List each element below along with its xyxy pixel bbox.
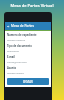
staticText: Ingrese asunto xyxy=(7,71,24,74)
button[interactable]: Asunto xyxy=(7,66,49,77)
staticText: Asunto xyxy=(7,66,17,70)
button[interactable]: Tipo de documento xyxy=(7,44,49,55)
staticText: Numero de expediente xyxy=(7,33,37,37)
staticText: Tipo de documento xyxy=(7,44,32,48)
staticText: correo@mail.com xyxy=(7,60,27,63)
staticText: E-mail xyxy=(7,55,15,59)
staticText: Mesa de Partes xyxy=(11,24,34,28)
staticText: Mesa de Partes Virtual xyxy=(0,3,64,8)
button[interactable]: Back xyxy=(5,23,11,29)
button[interactable]: ENVIAR xyxy=(7,78,49,85)
button[interactable]: Numero de expediente xyxy=(7,33,49,44)
staticText: ENVIAR xyxy=(23,80,33,84)
button[interactable]: E-mail xyxy=(7,55,49,66)
staticText: Seleccione xyxy=(7,49,19,52)
staticText: Ingrese numero xyxy=(7,38,26,41)
button[interactable]: Back xyxy=(5,22,51,30)
